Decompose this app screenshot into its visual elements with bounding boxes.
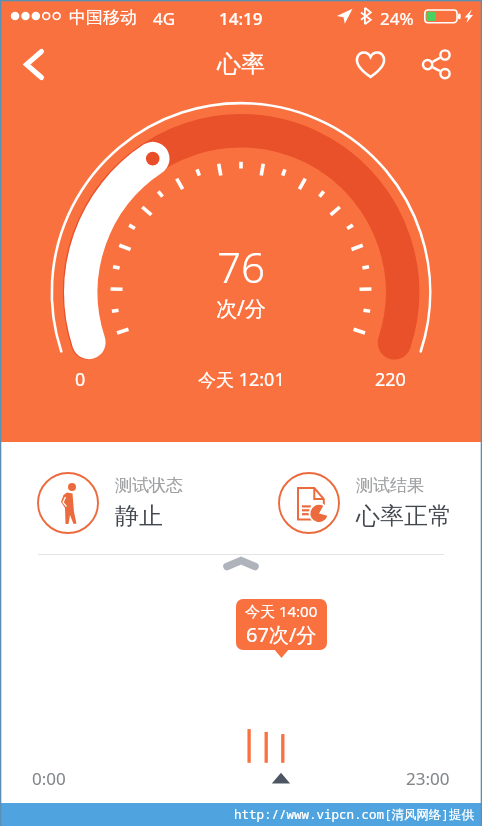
staticText: 今天 12:01: [198, 367, 285, 392]
staticText: 67次/分: [246, 621, 317, 648]
staticText: 220: [375, 367, 406, 392]
button[interactable]: Collapse: [211, 552, 271, 580]
staticText: 次/分: [216, 294, 266, 323]
staticText: 中国移动: [69, 7, 137, 28]
staticText: 今天 14:00: [245, 601, 318, 621]
button[interactable]: 测试结果: [278, 472, 452, 534]
button[interactable]: 测试状态: [37, 472, 183, 534]
button[interactable]: Back: [8, 32, 60, 96]
staticText: http://www.vipcn.com[清风网络]提供: [234, 806, 475, 823]
button[interactable]: Share: [410, 32, 462, 96]
staticText: 心率正常: [356, 501, 452, 531]
staticText: 23:00: [406, 767, 450, 790]
staticText: 心率: [217, 49, 265, 79]
staticText: 测试状态: [115, 475, 183, 496]
button[interactable]: Favorite: [344, 32, 396, 96]
staticText: 76: [217, 238, 265, 295]
staticText: 0: [75, 367, 86, 392]
staticText: 0:00: [32, 767, 66, 790]
staticText: 4G: [153, 7, 176, 30]
staticText: 测试结果: [356, 475, 424, 496]
staticText: 静止: [115, 501, 163, 531]
staticText: 14:19: [219, 7, 263, 30]
staticText: 24%: [380, 7, 414, 30]
